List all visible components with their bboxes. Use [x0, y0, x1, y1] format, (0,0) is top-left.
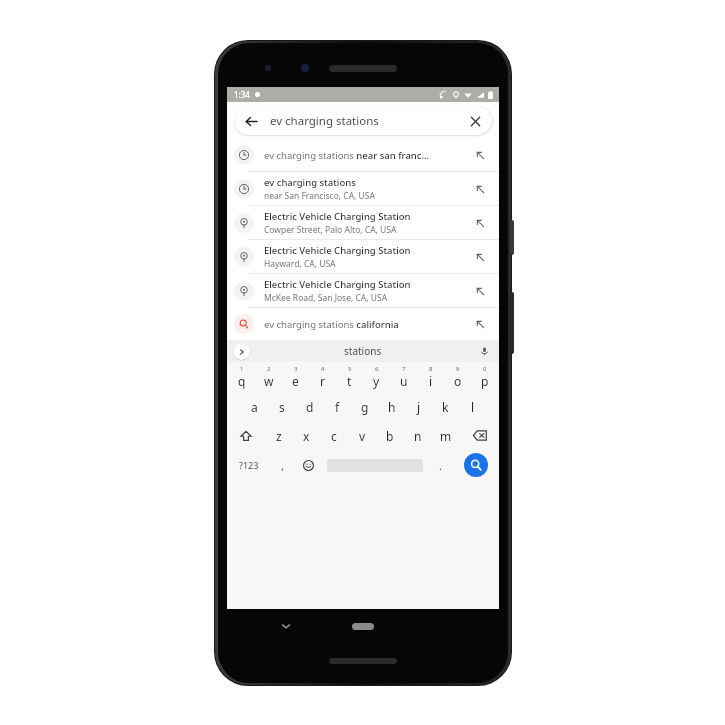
staticText: d [306, 399, 314, 415]
button[interactable]: v [348, 421, 376, 450]
button[interactable]: c [320, 421, 348, 450]
button[interactable]: j [405, 392, 432, 421]
staticText: h [388, 399, 396, 415]
staticText: p [481, 373, 489, 389]
staticText: g [361, 399, 369, 415]
button[interactable]: d [296, 392, 324, 421]
staticText: Electric Vehicle Charging Station [264, 278, 411, 291]
staticText: 5 [348, 365, 352, 373]
button[interactable]: Emoji [294, 450, 323, 480]
staticText: o [454, 373, 462, 389]
button[interactable]: s [268, 392, 296, 421]
button[interactable]: x [292, 421, 320, 450]
button[interactable]: z [265, 421, 292, 450]
button[interactable]: Use this suggestion [471, 248, 489, 266]
button[interactable]: m [432, 421, 460, 450]
button[interactable]: Clear search [463, 109, 487, 133]
button[interactable]: 1 [228, 362, 255, 392]
button[interactable]: Electric Vehicle Charging Station [227, 274, 499, 307]
staticText: m [440, 428, 452, 444]
staticText: b [386, 428, 394, 444]
button[interactable]: 2 [255, 362, 282, 392]
staticText: u [400, 373, 408, 389]
staticText: ?123 [239, 459, 259, 471]
staticText: 8 [429, 365, 433, 373]
button[interactable]: Electric Vehicle Charging Station [227, 206, 499, 239]
button[interactable]: More suggestions [233, 343, 250, 360]
button[interactable]: Use this suggestion [471, 315, 489, 333]
button[interactable]: 0 [471, 362, 498, 392]
staticText: . [439, 458, 442, 473]
staticText: v [359, 428, 366, 444]
staticText: y [373, 373, 380, 389]
button[interactable]: a [240, 392, 268, 421]
staticText: t [347, 373, 352, 389]
staticText: ev charging stations [264, 176, 356, 189]
staticText: r [320, 373, 325, 389]
button[interactable]: n [404, 421, 432, 450]
staticText: ev charging stations [270, 113, 463, 129]
staticText: 1:34 [234, 89, 250, 100]
button[interactable]: , [271, 450, 294, 480]
staticText: 9 [456, 365, 460, 373]
button[interactable]: l [459, 392, 486, 421]
staticText: a [251, 399, 258, 415]
staticText: ev charging stations near san franc... [264, 149, 430, 162]
button[interactable]: . [427, 450, 453, 480]
button[interactable]: ev charging stations [227, 172, 499, 205]
staticText: q [238, 373, 246, 389]
button[interactable]: f [324, 392, 351, 421]
staticText: e [292, 373, 299, 389]
button[interactable]: Voice input [476, 343, 492, 359]
staticText: , [281, 458, 284, 473]
button[interactable]: Backspace [460, 421, 499, 450]
staticText: 0 [483, 365, 487, 373]
button[interactable]: 5 [336, 362, 363, 392]
button[interactable]: 3 [282, 362, 309, 392]
staticText: n [414, 428, 422, 444]
button[interactable]: ?123 [227, 450, 271, 480]
button[interactable]: Shift [227, 421, 265, 450]
staticText: Hayward, CA, USA [264, 258, 336, 270]
button[interactable]: Use this suggestion [471, 146, 489, 164]
button[interactable]: h [378, 392, 405, 421]
staticText: Electric Vehicle Charging Station [264, 210, 411, 223]
staticText: z [276, 428, 282, 444]
staticText: Cowper Street, Palo Alto, CA, USA [264, 224, 397, 236]
button[interactable]: ev charging stations california [227, 308, 499, 340]
button[interactable]: Use this suggestion [471, 180, 489, 198]
button[interactable]: Back [238, 108, 264, 134]
staticText: w [264, 373, 274, 389]
staticText: j [417, 399, 421, 415]
staticText: 1 [240, 365, 244, 373]
staticText: i [429, 373, 433, 389]
staticText: 4 [321, 365, 325, 373]
staticText: 7 [402, 365, 406, 373]
button[interactable]: 4 [309, 362, 336, 392]
button[interactable]: 6 [363, 362, 390, 392]
staticText: ev charging stations california [264, 318, 399, 331]
staticText: Electric Vehicle Charging Station [264, 244, 411, 257]
button[interactable]: Electric Vehicle Charging Station [227, 240, 499, 273]
staticText: near San Francisco, CA, USA [264, 190, 375, 202]
button[interactable]: 8 [417, 362, 444, 392]
button[interactable]: stations [344, 344, 382, 358]
button[interactable]: Search [464, 453, 488, 477]
staticText: 2 [267, 365, 271, 373]
staticText: l [471, 399, 475, 415]
staticText: 3 [294, 365, 298, 373]
button[interactable]: 7 [390, 362, 417, 392]
button[interactable]: Back [234, 106, 492, 135]
button[interactable]: b [376, 421, 404, 450]
button[interactable]: g [351, 392, 378, 421]
staticText: 6 [375, 365, 379, 373]
button[interactable]: ev charging stations near san franc... [227, 139, 499, 171]
staticText: x [303, 428, 310, 444]
staticText: s [279, 399, 285, 415]
button[interactable]: Use this suggestion [471, 282, 489, 300]
button[interactable]: Use this suggestion [471, 214, 489, 232]
button[interactable]: 9 [444, 362, 471, 392]
staticText: k [442, 399, 449, 415]
button[interactable]: k [432, 392, 459, 421]
